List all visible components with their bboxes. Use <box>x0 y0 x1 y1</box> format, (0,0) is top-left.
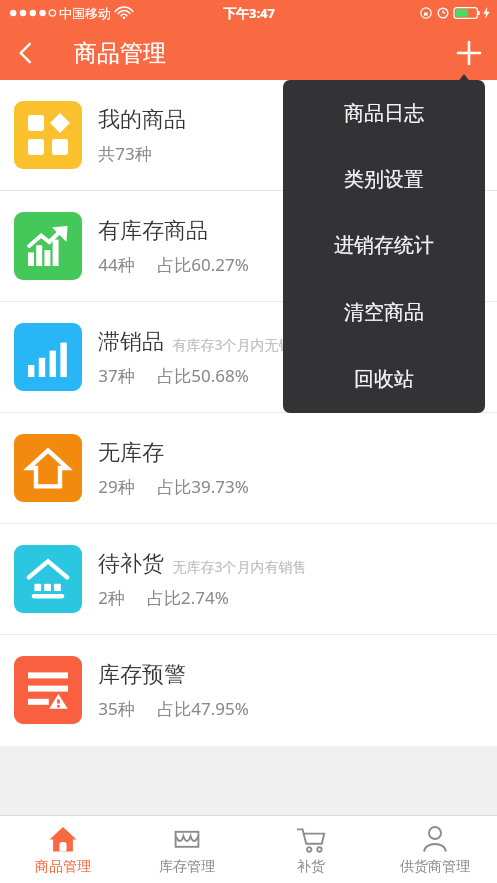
staticText: 占比2.74% <box>147 586 229 609</box>
staticText: 下午3:47 <box>223 4 275 22</box>
staticText: 供货商管理 <box>400 858 470 876</box>
staticText: 商品管理 <box>35 858 91 876</box>
button[interactable]: 补货 <box>249 816 373 883</box>
button[interactable]: 库存管理 <box>125 816 249 883</box>
staticText: 44种 <box>98 253 135 276</box>
button[interactable]: 供货商管理 <box>373 816 497 883</box>
staticText: 进销存统计 <box>334 233 434 258</box>
staticText: 补货 <box>297 858 325 876</box>
staticText: 清空商品 <box>344 300 424 325</box>
staticText: 中国移动 <box>59 5 111 21</box>
staticText: 无库存 <box>98 439 164 467</box>
staticText: 商品管理 <box>74 39 166 68</box>
button[interactable]: 待补货 <box>0 524 497 634</box>
button[interactable]: 库存预警 <box>0 635 497 745</box>
staticText: 占比39.73% <box>157 475 249 498</box>
button[interactable]: Add <box>441 26 497 80</box>
staticText: 2种 <box>98 586 125 609</box>
staticText: 37种 <box>98 364 135 387</box>
staticText: 29种 <box>98 475 135 498</box>
staticText: 库存管理 <box>159 858 215 876</box>
staticText: 库存预警 <box>98 661 186 689</box>
staticText: 35种 <box>98 697 135 720</box>
staticText: 占比50.68% <box>157 364 249 387</box>
button[interactable]: 清空商品 <box>283 279 485 346</box>
staticText: 占比47.95% <box>157 697 249 720</box>
button[interactable]: 无库存 <box>0 413 497 523</box>
staticText: 占比60.27% <box>157 253 249 276</box>
button[interactable]: 商品管理 <box>0 816 125 883</box>
staticText: 共73种 <box>98 142 152 165</box>
staticText: 有库存3个月内无销售 <box>172 335 307 354</box>
button[interactable]: 商品日志 <box>283 80 485 146</box>
button[interactable]: 有库存商品 <box>0 191 497 301</box>
staticText: 类别设置 <box>344 167 424 192</box>
staticText: 有库存商品 <box>98 217 208 245</box>
staticText: 回收站 <box>354 367 414 392</box>
staticText: 我的商品 <box>98 106 186 134</box>
staticText: 待补货 <box>98 550 164 578</box>
button[interactable]: 滞销品 <box>0 302 497 412</box>
staticText: 滞销品 <box>98 328 164 356</box>
button[interactable]: 我的商品 <box>0 80 497 190</box>
button[interactable]: 类别设置 <box>283 146 485 212</box>
button[interactable]: 回收站 <box>283 346 485 413</box>
button[interactable]: 进销存统计 <box>283 212 485 279</box>
staticText: 商品日志 <box>344 101 424 126</box>
staticText: 无库存3个月内有销售 <box>172 557 307 576</box>
button[interactable]: Back <box>0 27 52 79</box>
